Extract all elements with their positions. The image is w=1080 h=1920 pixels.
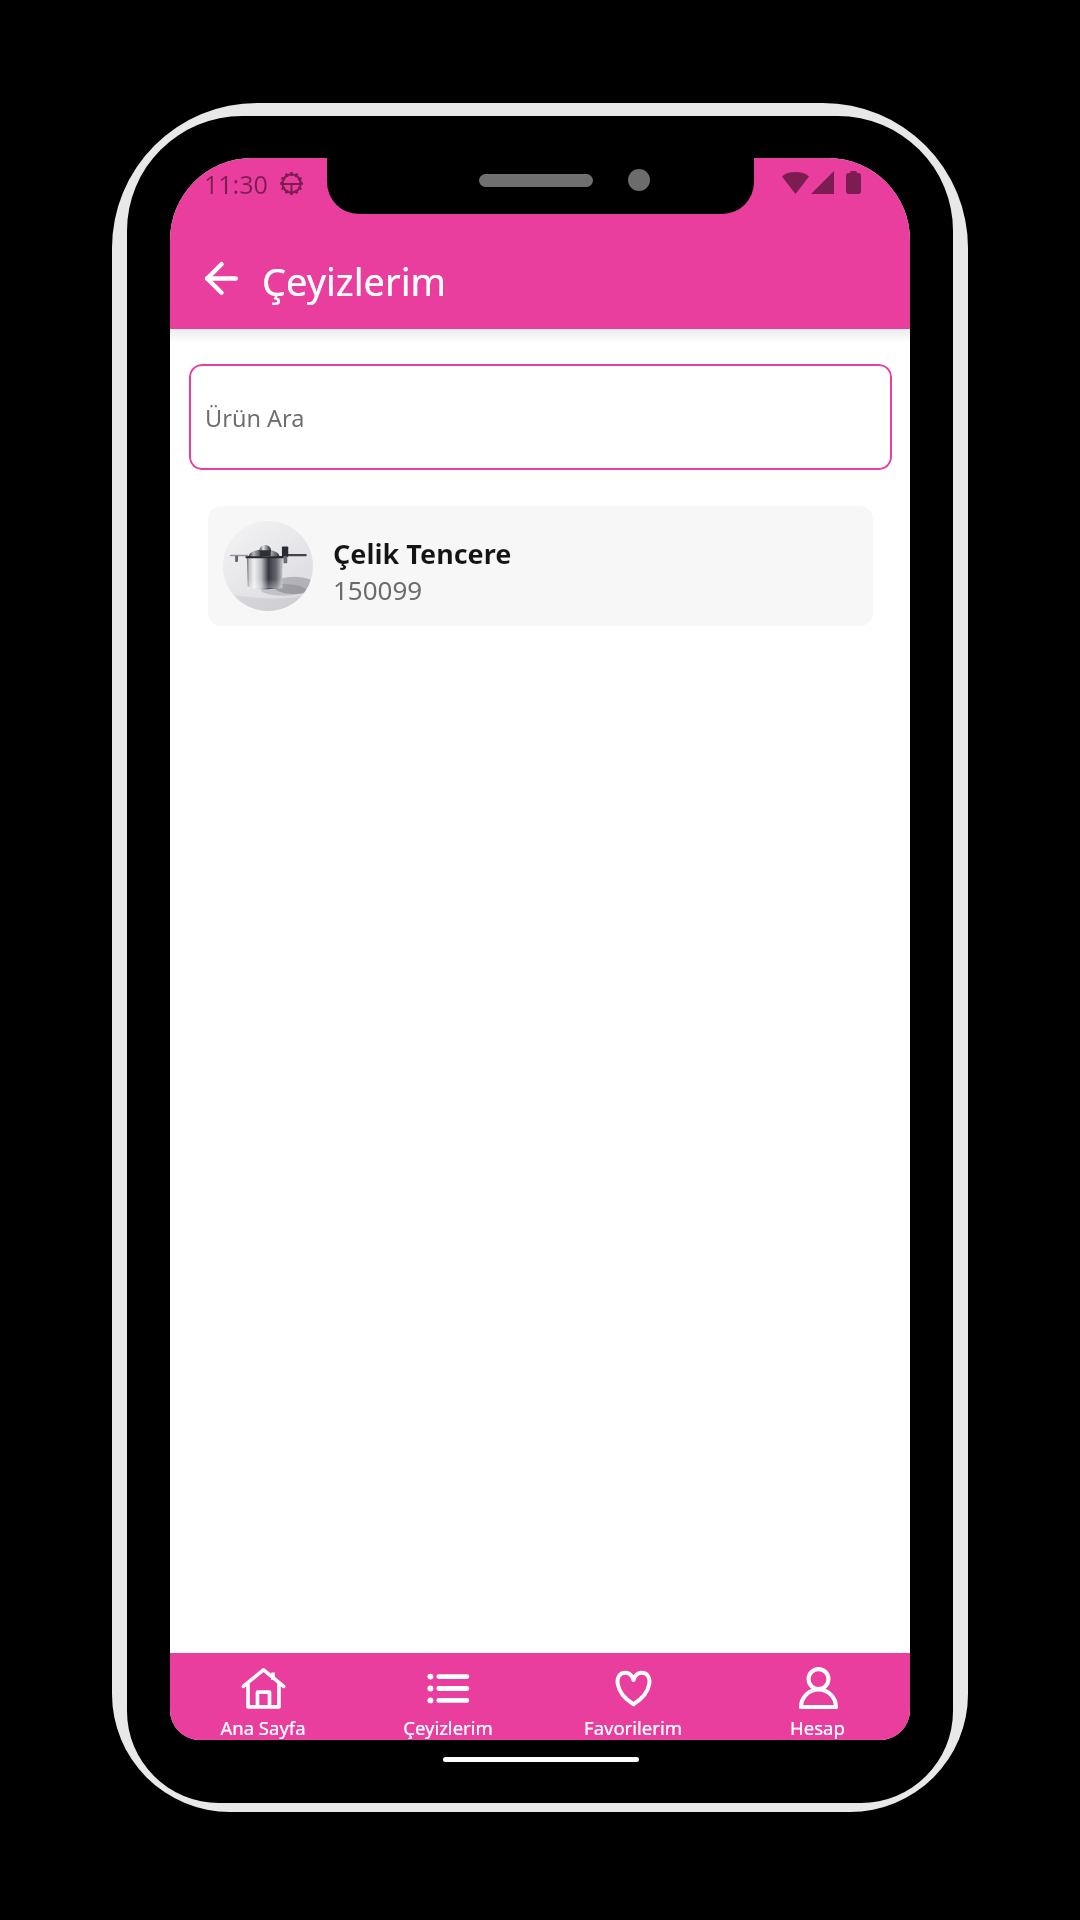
button[interactable]: Çelik Tencere: [208, 506, 873, 626]
staticText: Ana Sayfa: [220, 1715, 306, 1740]
staticText: Çeyizlerim: [262, 255, 446, 307]
staticText: 150099: [333, 572, 423, 607]
staticText: Çelik Tencere: [333, 535, 512, 572]
staticText: 11:30: [204, 167, 268, 201]
staticText: Çeyizlerim: [403, 1715, 493, 1740]
button[interactable]: Favorilerim: [540, 1653, 725, 1740]
staticText: Ürün Ara: [205, 402, 305, 434]
button[interactable]: Ürün Ara: [189, 364, 892, 470]
button[interactable]: Hesap: [725, 1653, 910, 1740]
button[interactable]: Çeyizlerim: [355, 1653, 540, 1740]
staticText: Favorilerim: [584, 1715, 682, 1740]
button[interactable]: Back: [197, 254, 245, 302]
staticText: Hesap: [790, 1715, 845, 1740]
button[interactable]: Ana Sayfa: [170, 1653, 355, 1740]
